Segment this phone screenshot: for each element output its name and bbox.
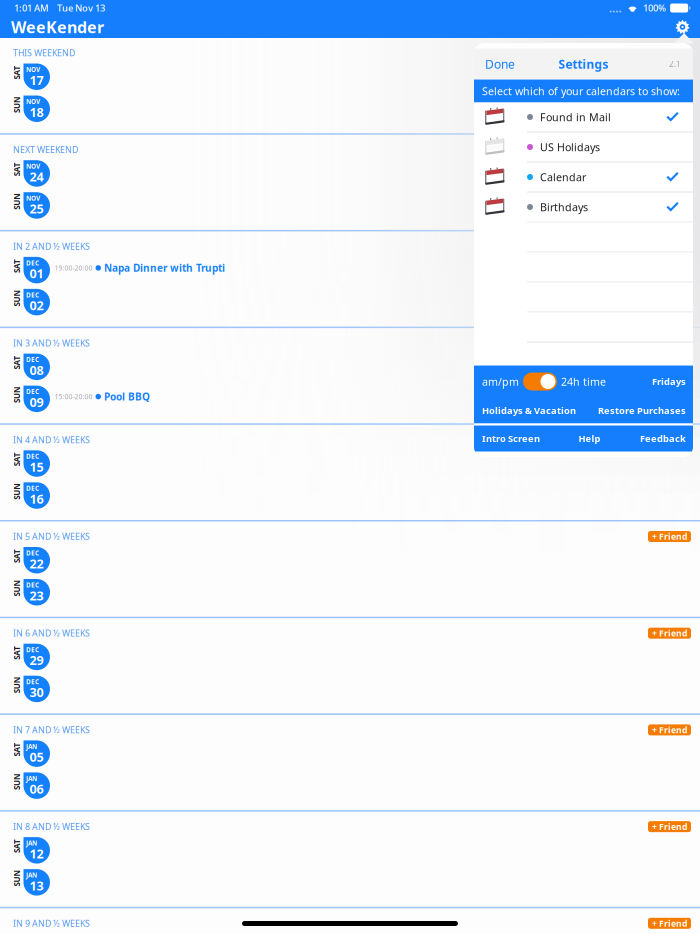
- staticText: 19:00-20:00: [54, 263, 92, 272]
- staticText: SUN: [8, 873, 25, 884]
- staticText: 100%: [643, 2, 666, 14]
- staticText: DEC: [26, 387, 39, 396]
- staticText: +: [652, 531, 657, 542]
- button[interactable]: Fridays: [648, 373, 686, 389]
- button[interactable]: Toggle 24 hour time: [523, 372, 557, 390]
- button[interactable]: Holidays & Vacation: [482, 402, 576, 418]
- staticText: SAT: [10, 551, 24, 561]
- staticText: SUN: [8, 196, 25, 207]
- staticText: SAT: [10, 260, 24, 271]
- button[interactable]: +: [648, 531, 691, 542]
- staticText: IN 4 AND ½ WEEKS: [13, 434, 90, 446]
- staticText: Holidays & Vacation: [482, 404, 576, 417]
- staticText: DEC: [26, 290, 39, 299]
- button[interactable]: +: [648, 628, 691, 639]
- staticText: IN 5 AND ½ WEEKS: [13, 531, 90, 542]
- staticText: +: [652, 724, 657, 736]
- staticText: JAN: [26, 871, 37, 879]
- staticText: Select which of your calendars to show:: [482, 84, 680, 98]
- staticText: IN 7 AND ½ WEEKS: [13, 724, 90, 736]
- staticText: Calendar: [540, 170, 586, 184]
- staticText: 17: [29, 71, 43, 89]
- staticText: 24h time: [561, 374, 606, 389]
- staticText: am/pm: [482, 374, 519, 389]
- staticText: SUN: [8, 292, 25, 303]
- staticText: SUN: [8, 583, 25, 593]
- staticText: NOV: [26, 65, 40, 74]
- staticText: SAT: [10, 841, 24, 852]
- staticText: THIS WEEKEND: [13, 47, 75, 59]
- button[interactable]: +: [648, 918, 691, 929]
- staticText: IN 2 AND ½ WEEKS: [13, 240, 90, 252]
- staticText: SAT: [10, 164, 24, 175]
- staticText: Found in Mail: [540, 110, 611, 124]
- staticText: 01: [29, 265, 43, 282]
- staticText: SUN: [8, 389, 25, 400]
- button[interactable]: Intro Screen: [482, 430, 540, 446]
- staticText: Napa Dinner with Trupti: [104, 261, 225, 275]
- staticText: DEC: [26, 549, 39, 557]
- staticText: SUN: [8, 486, 25, 497]
- staticText: 23: [29, 587, 43, 604]
- staticText: 24: [29, 168, 43, 185]
- staticText: 29: [29, 652, 43, 669]
- button[interactable]: Done: [474, 48, 520, 79]
- button[interactable]: Birthdays: [474, 192, 693, 222]
- staticText: DEC: [26, 452, 39, 461]
- staticText: 16: [29, 490, 43, 507]
- staticText: SAT: [10, 67, 24, 78]
- staticText: Friend: [659, 821, 687, 832]
- button[interactable]: Feedback: [639, 430, 686, 446]
- staticText: JAN: [26, 742, 37, 751]
- button[interactable]: Help: [576, 430, 602, 446]
- staticText: SUN: [8, 99, 25, 110]
- staticText: 15: [29, 458, 43, 475]
- staticText: 13: [29, 877, 43, 894]
- staticText: NEXT WEEKEND: [13, 144, 78, 156]
- button[interactable]: +: [648, 821, 691, 832]
- staticText: 05: [29, 748, 43, 766]
- staticText: Help: [578, 432, 600, 445]
- staticText: Pool BBQ: [104, 390, 150, 403]
- staticText: NOV: [26, 194, 40, 202]
- staticText: Intro Screen: [482, 432, 540, 445]
- staticText: Feedback: [640, 432, 686, 445]
- staticText: DEC: [26, 355, 39, 364]
- staticText: Birthdays: [540, 200, 588, 214]
- staticText: WeeKender: [11, 16, 104, 38]
- staticText: +: [652, 627, 657, 639]
- staticText: IN 3 AND ½ WEEKS: [13, 337, 90, 349]
- staticText: IN 8 AND ½ WEEKS: [13, 821, 90, 832]
- staticText: JAN: [26, 774, 37, 783]
- staticText: NOV: [26, 162, 40, 170]
- button[interactable]: 15:00-20:00: [50, 389, 700, 405]
- button[interactable]: Calendar: [474, 162, 693, 192]
- staticText: Tue Nov 13: [57, 2, 105, 14]
- staticText: 02: [29, 297, 43, 314]
- staticText: DEC: [26, 258, 39, 267]
- staticText: 12: [29, 845, 43, 862]
- button[interactable]: Settings: [675, 19, 700, 34]
- staticText: SAT: [10, 357, 24, 368]
- staticText: +: [652, 917, 657, 929]
- staticText: 22: [29, 555, 43, 572]
- staticText: 09: [29, 393, 43, 411]
- button[interactable]: Restore Purchases: [597, 402, 686, 418]
- staticText: DEC: [26, 677, 39, 686]
- staticText: Friend: [659, 627, 687, 639]
- staticText: Friend: [659, 531, 687, 542]
- staticText: Friend: [659, 724, 687, 736]
- staticText: DEC: [26, 484, 39, 493]
- staticText: SUN: [8, 679, 25, 690]
- staticText: Done: [485, 56, 515, 72]
- staticText: 30: [29, 684, 43, 701]
- staticText: NOV: [26, 97, 40, 106]
- button[interactable]: Found in Mail: [474, 102, 693, 132]
- staticText: SAT: [10, 647, 24, 658]
- staticText: US Holidays: [540, 140, 600, 154]
- staticText: SAT: [10, 454, 24, 465]
- button[interactable]: US Holidays: [474, 132, 693, 162]
- staticText: 2.1: [669, 59, 681, 69]
- button[interactable]: +: [648, 724, 691, 735]
- button[interactable]: 19:00-20:00: [50, 260, 700, 276]
